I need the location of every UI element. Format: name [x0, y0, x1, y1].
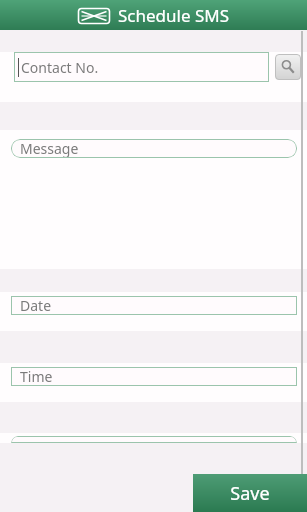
- button[interactable]: Time: [11, 367, 297, 386]
- button[interactable]: Message: [11, 139, 297, 158]
- staticText: Message: [20, 139, 79, 158]
- staticText: Date: [20, 296, 52, 315]
- staticText: Save: [230, 481, 270, 506]
- button[interactable]: Contact No.: [14, 52, 269, 82]
- staticText: Schedule SMS: [118, 4, 230, 27]
- staticText: Time: [20, 367, 53, 386]
- button[interactable]: [11, 436, 297, 443]
- button[interactable]: Save: [193, 474, 307, 512]
- button[interactable]: Date: [11, 296, 297, 315]
- staticText: Contact No.: [21, 58, 99, 77]
- button[interactable]: Search contact: [275, 54, 301, 80]
